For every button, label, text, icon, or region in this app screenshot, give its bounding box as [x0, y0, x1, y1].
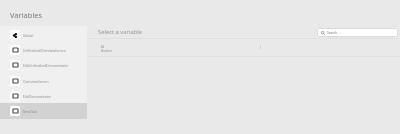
staticText: Number: [101, 49, 112, 53]
staticText: NewTask: [23, 109, 38, 114]
staticText: Id: [101, 45, 104, 49]
staticText: EditDemonstratie: [23, 94, 51, 99]
button[interactable]: Global: [0, 27, 87, 43]
staticText: Select a variable: [98, 28, 143, 36]
button[interactable]: EditDemonstratie: [0, 88, 87, 104]
button[interactable]: NewTask: [0, 103, 87, 119]
button[interactable]: Search: [317, 28, 398, 37]
button[interactable]: EditUnfinishedDemonstratie: [0, 57, 87, 73]
staticText: Variables: [10, 10, 43, 20]
button[interactable]: Id: [87, 39, 400, 57]
staticText: OverviewScreen: [23, 79, 49, 84]
button[interactable]: OverviewScreen: [0, 73, 87, 89]
button[interactable]: UnfinishedOverviewScreen: [0, 42, 87, 58]
staticText: Search ...: [327, 31, 341, 35]
staticText: EditUnfinishedDemonstratie: [23, 63, 69, 68]
staticText: UnfinishedOverviewScreen: [23, 48, 66, 53]
staticText: Global: [23, 33, 34, 38]
other: Search: [321, 31, 325, 35]
staticText: 1: [260, 46, 262, 50]
